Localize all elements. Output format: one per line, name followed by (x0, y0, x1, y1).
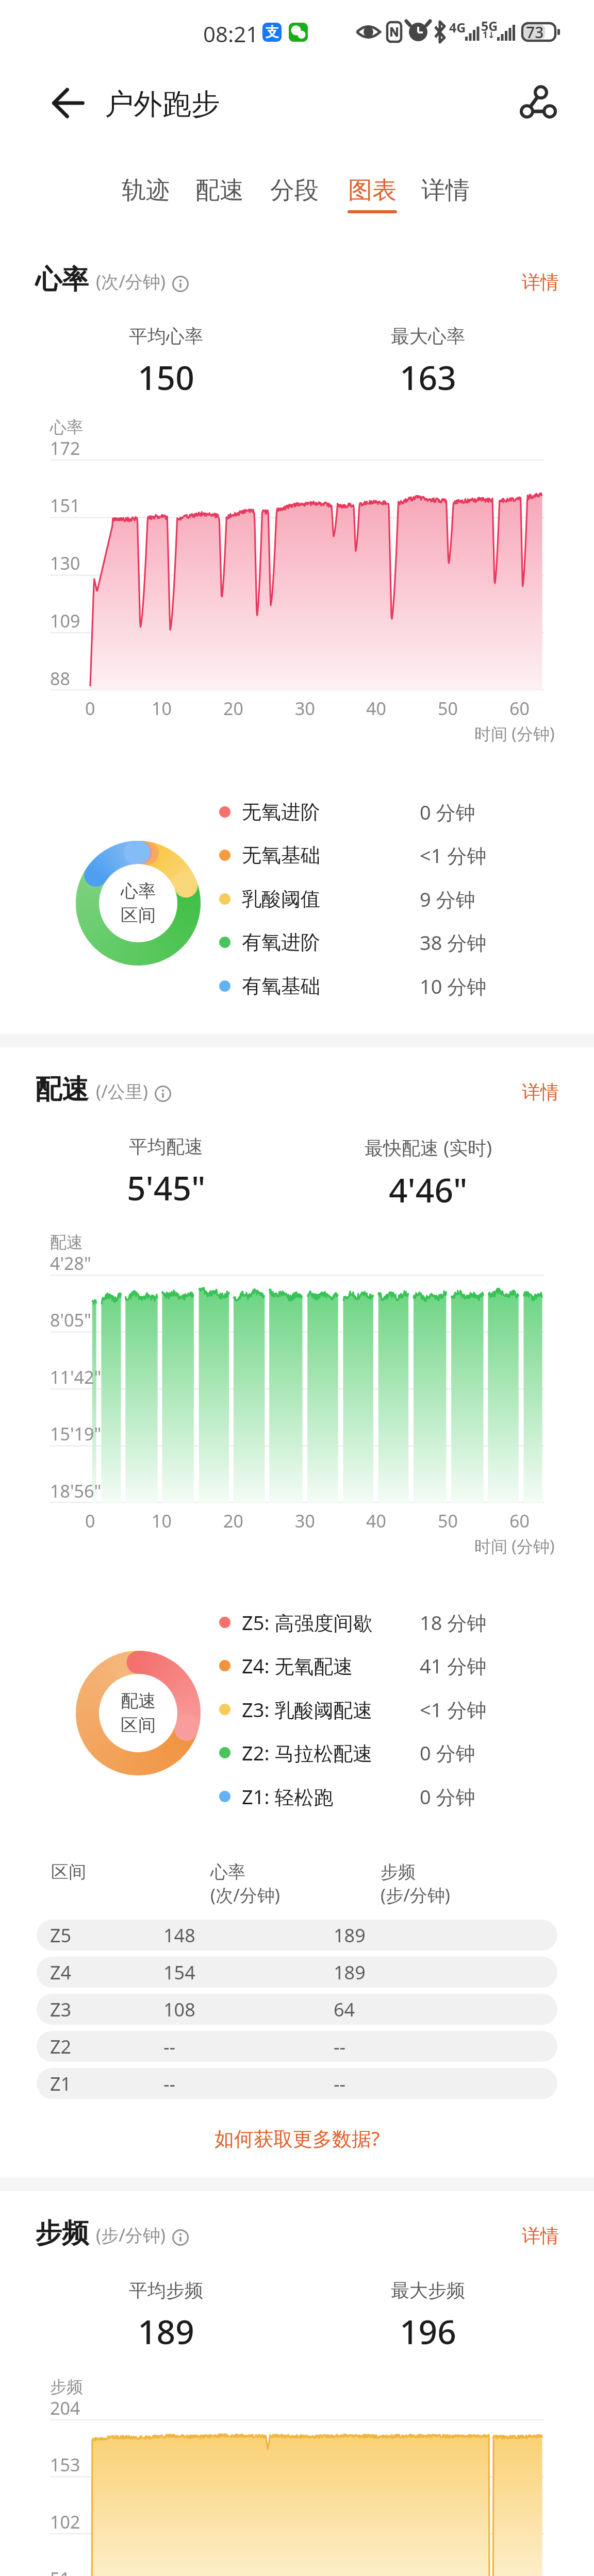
staticText: 88 (50, 667, 70, 690)
staticText: 有氧进阶 (242, 930, 320, 955)
staticText: 204 (50, 2396, 80, 2420)
staticText: <1 分钟 (420, 842, 487, 869)
staticText: 时间 (分钟) (474, 1535, 555, 1557)
staticText: (步/分钟) (381, 1883, 451, 1907)
staticText: 153 (50, 2453, 80, 2477)
button[interactable]: 有氧进阶 (219, 925, 559, 960)
staticText: Z4 (50, 1960, 72, 1985)
staticText: 08:21 (203, 19, 259, 48)
staticText: 步频 (35, 2216, 89, 2250)
staticText: 配速 (121, 1690, 156, 1712)
staticText: 最大心率 (391, 325, 465, 348)
staticText: 最快配速 (实时) (365, 1135, 492, 1160)
staticText: Z4: 无氧配速 (242, 1652, 353, 1679)
staticText: 如何获取更多数据? (214, 2125, 380, 2151)
button[interactable]: 如何获取更多数据? (209, 2123, 385, 2154)
button[interactable]: 详情 (505, 269, 559, 294)
button[interactable]: 配速 (184, 175, 256, 206)
staticText: 41 分钟 (420, 1652, 487, 1679)
staticText: 9 分钟 (420, 886, 475, 912)
button[interactable]: Z5 (37, 1920, 557, 1951)
staticText: Z2: 马拉松配速 (242, 1739, 373, 1766)
button[interactable]: Back (41, 80, 88, 126)
staticText: 区间 (51, 1861, 86, 1883)
button[interactable]: Z5: 高强度间歇 (219, 1605, 559, 1640)
staticText: Z1: 轻松跑 (242, 1783, 334, 1810)
button[interactable]: 无氧基础 (219, 838, 559, 873)
staticText: 40 (366, 697, 386, 720)
button[interactable]: 详情 (505, 2223, 559, 2248)
staticText: 心率 (121, 880, 156, 902)
staticText: 心率 (50, 417, 83, 437)
button[interactable]: Z2: 马拉松配速 (219, 1735, 559, 1770)
staticText: (步/分钟) (96, 2223, 166, 2247)
staticText: 10 分钟 (420, 973, 487, 999)
button[interactable]: 轨迹 (110, 175, 182, 206)
button[interactable]: 图表 (336, 175, 408, 213)
staticText: 区间 (121, 1714, 156, 1736)
button[interactable]: Z3: 乳酸阈配速 (219, 1692, 559, 1727)
staticText: 189 (138, 2309, 194, 2354)
staticText: 148 (163, 1923, 195, 1948)
staticText: 50 (438, 697, 458, 720)
staticText: 无氧基础 (242, 843, 320, 868)
button[interactable]: Share (513, 80, 559, 126)
staticText: 4'28" (50, 1251, 91, 1275)
staticText: 20 (223, 697, 243, 720)
staticText: 64 (334, 1997, 355, 2022)
staticText: -- (334, 2071, 346, 2096)
staticText: 平均心率 (129, 325, 203, 348)
button[interactable]: Z1 (37, 2068, 557, 2099)
staticText: 4G (449, 19, 466, 36)
staticText: -- (163, 2071, 176, 2096)
staticText: Z3 (50, 1997, 72, 2022)
staticText: 详情 (522, 270, 559, 294)
staticText: 163 (400, 355, 456, 400)
button[interactable]: 详情 (505, 1079, 559, 1104)
staticText: 1↓ (483, 29, 495, 41)
staticText: 51 (50, 2567, 70, 2576)
staticText: (次/分钟) (210, 1883, 280, 1907)
staticText: 196 (400, 2309, 456, 2354)
button[interactable]: Z4: 无氧配速 (219, 1648, 559, 1683)
button[interactable]: 详情 (409, 175, 482, 206)
staticText: 20 (223, 1509, 243, 1533)
staticText: 轨迹 (122, 175, 170, 206)
staticText: Z5: 高强度间歇 (242, 1609, 373, 1636)
staticText: <1 分钟 (420, 1696, 487, 1723)
staticText: 60 (509, 1509, 530, 1533)
button[interactable]: 无氧进阶 (219, 794, 559, 829)
staticText: 102 (50, 2510, 80, 2534)
staticText: Z1 (50, 2071, 72, 2096)
staticText: 5G (481, 17, 498, 35)
staticText: 11'42" (50, 1365, 102, 1389)
staticText: 18'56" (50, 1479, 102, 1503)
staticText: 0 (85, 697, 95, 720)
staticText: 15'19" (50, 1422, 102, 1446)
staticText: -- (334, 2034, 346, 2059)
staticText: Z3: 乳酸阈配速 (242, 1696, 373, 1723)
staticText: 0 分钟 (420, 1783, 475, 1810)
button[interactable]: Z2 (37, 2031, 557, 2062)
staticText: 区间 (121, 904, 156, 926)
staticText: 0 分钟 (420, 1739, 475, 1766)
button[interactable]: Z1: 轻松跑 (219, 1779, 559, 1814)
button[interactable]: 有氧基础 (219, 969, 559, 1004)
staticText: 189 (334, 1960, 366, 1985)
staticText: 步频 (50, 2377, 83, 2397)
staticText: 支 (266, 24, 279, 41)
staticText: 详情 (421, 175, 470, 206)
staticText: (次/分钟) (96, 269, 166, 293)
button[interactable]: Z4 (37, 1957, 557, 1988)
button[interactable]: 分段 (258, 175, 331, 206)
staticText: 配速 (35, 1073, 89, 1107)
staticText: 详情 (522, 2224, 559, 2247)
staticText: 40 (366, 1509, 386, 1533)
staticText: 平均步频 (129, 2279, 203, 2302)
staticText: 50 (438, 1509, 458, 1533)
button[interactable]: 乳酸阈值 (219, 882, 559, 917)
staticText: 108 (163, 1997, 195, 2022)
staticText: Z2 (50, 2034, 72, 2059)
staticText: 10 (152, 697, 172, 720)
button[interactable]: Z3 (37, 1994, 557, 2025)
